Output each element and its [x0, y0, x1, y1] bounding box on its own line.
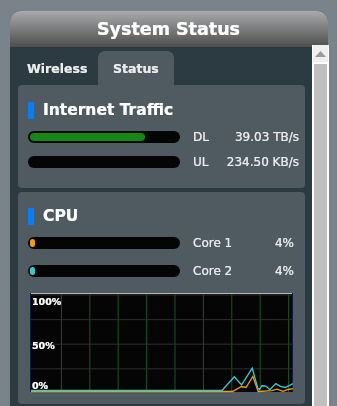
staticText: Core 1 — [193, 236, 233, 250]
staticText: UL — [193, 155, 209, 169]
staticText: 100% — [32, 296, 62, 307]
staticText: Wireless — [27, 61, 88, 76]
button[interactable]: Wireless — [18, 51, 96, 85]
staticText: Internet Traffic — [43, 101, 174, 119]
staticText: 0% — [32, 380, 49, 391]
button[interactable]: Scroll up — [312, 45, 329, 406]
staticText: System Status — [97, 19, 241, 39]
staticText: DL — [193, 130, 209, 144]
staticText: CPU — [43, 207, 79, 225]
staticText: 50% — [32, 340, 55, 351]
staticText: Core 2 — [193, 264, 233, 278]
staticText: 39.03 TB/s — [234, 130, 299, 144]
staticText: 4% — [274, 264, 294, 278]
staticText: 234.50 KB/s — [226, 155, 299, 169]
button[interactable]: Status — [98, 51, 174, 85]
staticText: 4% — [274, 236, 294, 250]
staticText: Status — [113, 61, 159, 76]
